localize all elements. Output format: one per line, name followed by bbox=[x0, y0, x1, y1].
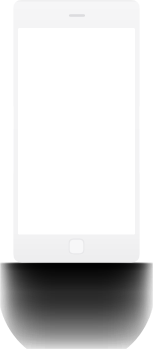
button[interactable]: White smartphone product photo bbox=[0, 0, 153, 349]
